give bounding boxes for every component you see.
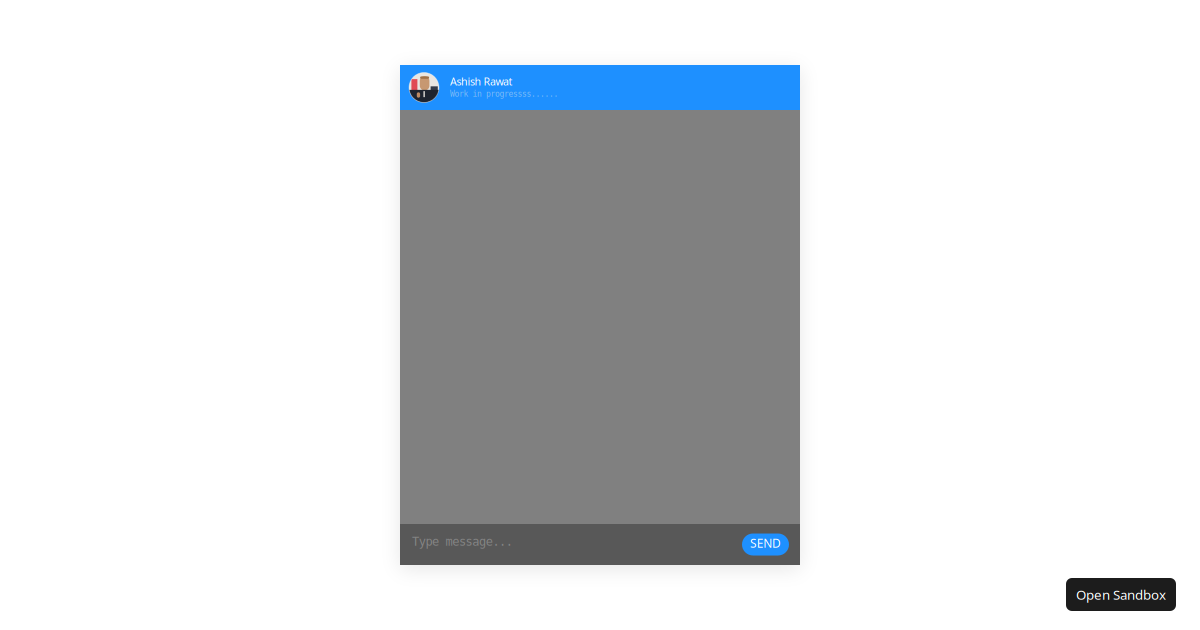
staticText: SEND xyxy=(750,535,781,551)
button[interactable]: Open Sandbox xyxy=(1066,578,1176,611)
staticText: Open Sandbox xyxy=(1076,586,1166,603)
staticText: Ashish Rawat xyxy=(450,74,512,89)
button[interactable]: Type message... xyxy=(412,524,702,565)
staticText: Work in progressss...... xyxy=(450,89,558,99)
button[interactable]: SEND xyxy=(742,533,789,555)
staticText: Type message... xyxy=(412,535,513,548)
button[interactable]: Ashish Rawat xyxy=(400,65,800,110)
